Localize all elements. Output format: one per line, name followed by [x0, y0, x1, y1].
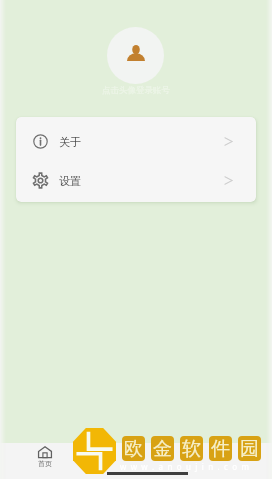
staticText: 软 — [182, 437, 201, 461]
staticText: 首页 — [38, 459, 52, 468]
staticText: 件 — [211, 437, 230, 461]
button[interactable]: Avatar — [107, 27, 164, 84]
staticText: 设置 — [59, 174, 81, 188]
staticText: 金 — [153, 437, 172, 461]
button[interactable]: 首页 — [0, 443, 90, 468]
staticText: w w w . a n o u j i n . c o m — [120, 461, 251, 472]
staticText: 园 — [240, 437, 259, 461]
button[interactable]: 关于 — [16, 122, 256, 161]
staticText: 点击头像登录账号 — [0, 85, 272, 96]
button[interactable]: 设置 — [16, 161, 256, 200]
staticText: 欧 — [124, 437, 143, 461]
staticText: 关于 — [59, 135, 81, 149]
